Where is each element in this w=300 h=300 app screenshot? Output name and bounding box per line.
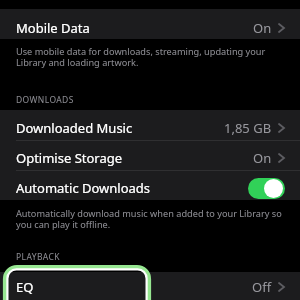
button[interactable]: Mobile Data <box>0 9 300 39</box>
button[interactable]: Optimise Storage <box>0 140 300 170</box>
button[interactable]: Downloaded Music <box>0 110 300 140</box>
staticText: EQ <box>16 278 34 296</box>
button[interactable]: Automatic Downloads <box>0 170 300 200</box>
staticText: Automatic Downloads <box>16 179 151 197</box>
staticText: Use mobile data for downloads, streaming… <box>16 45 266 69</box>
staticText: Automatically download music when added … <box>16 207 282 231</box>
staticText: Off <box>252 278 272 296</box>
staticText: 1,85 GB <box>224 119 272 137</box>
staticText: On <box>253 149 272 167</box>
button[interactable] <box>248 178 285 199</box>
staticText: Downloaded Music <box>16 119 133 137</box>
button[interactable]: EQ <box>0 272 300 300</box>
staticText: Optimise Storage <box>16 149 123 167</box>
staticText: Mobile Data <box>16 19 90 37</box>
staticText: PLAYBACK <box>16 251 60 263</box>
staticText: On <box>253 19 272 37</box>
staticText: DOWNLOADS <box>16 94 74 106</box>
